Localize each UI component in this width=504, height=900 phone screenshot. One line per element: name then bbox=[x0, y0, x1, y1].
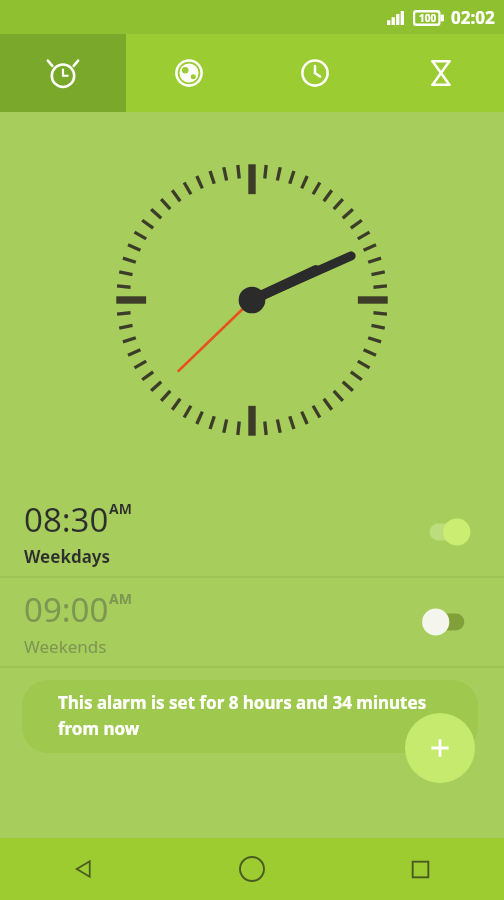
staticText: This alarm is set for 8 hours and 34 min… bbox=[58, 691, 458, 740]
button[interactable]: Alarm bbox=[0, 34, 126, 112]
button[interactable]: Alarm on bbox=[424, 515, 480, 549]
staticText: 09:00 bbox=[24, 587, 109, 632]
staticText: Weekends bbox=[24, 635, 107, 658]
button[interactable]: Timer bbox=[378, 34, 504, 112]
button[interactable]: Alarm off bbox=[424, 605, 480, 639]
button[interactable]: Recent apps bbox=[336, 838, 504, 900]
button[interactable]: Stopwatch bbox=[252, 34, 378, 112]
button[interactable]: Back bbox=[0, 838, 168, 900]
staticText: 100 bbox=[419, 11, 437, 25]
staticText: 08:30 bbox=[24, 497, 109, 542]
button[interactable]: World clock bbox=[126, 34, 252, 112]
button[interactable]: This alarm is set for 8 hours and 34 min… bbox=[22, 680, 478, 753]
button[interactable]: 08:30 bbox=[0, 488, 504, 576]
staticText: Weekdays bbox=[24, 545, 111, 568]
button[interactable]: Add alarm bbox=[405, 713, 475, 783]
button[interactable]: Home bbox=[168, 838, 336, 900]
staticText: 02:02 bbox=[451, 6, 495, 29]
staticText: AM bbox=[109, 589, 132, 608]
button[interactable]: 09:00 bbox=[0, 578, 504, 666]
staticText: AM bbox=[109, 499, 132, 518]
